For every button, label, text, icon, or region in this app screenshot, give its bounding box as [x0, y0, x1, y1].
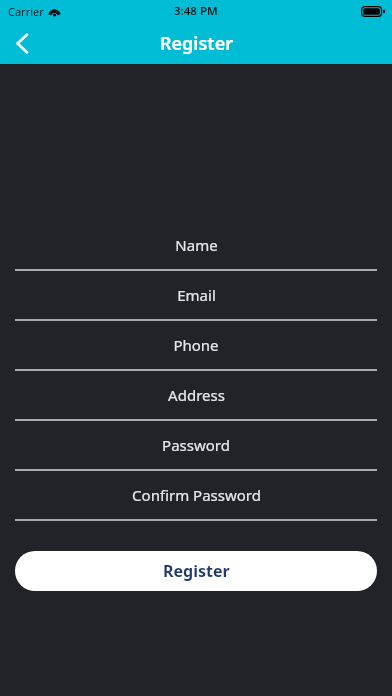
staticText: Register	[160, 31, 233, 56]
staticText: Password	[162, 435, 230, 455]
button[interactable]: Password	[0, 421, 392, 471]
staticText: Email	[177, 285, 216, 305]
button[interactable]: Phone	[0, 321, 392, 371]
button[interactable]: Email	[0, 271, 392, 321]
button[interactable]: Back	[0, 22, 44, 64]
staticText: Address	[168, 385, 225, 405]
button[interactable]: Confirm Password	[0, 471, 392, 521]
staticText: Phone	[173, 335, 219, 355]
button[interactable]: Address	[0, 371, 392, 421]
button[interactable]: Register	[15, 551, 377, 591]
staticText: 3:48 PM	[174, 3, 218, 19]
button[interactable]: Name	[0, 221, 392, 271]
staticText: Name	[175, 235, 218, 255]
staticText: Confirm Password	[132, 485, 261, 505]
staticText: Carrier	[8, 4, 44, 19]
staticText: Register	[163, 560, 230, 582]
